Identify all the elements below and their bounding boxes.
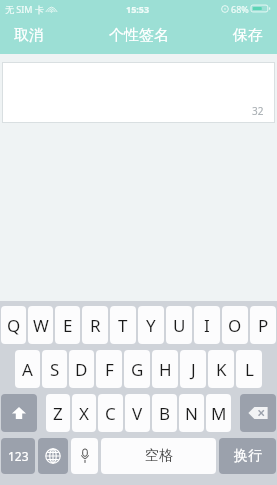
button[interactable]: Switch keyboard: [38, 438, 68, 474]
staticText: Z: [53, 402, 63, 425]
staticText: 68%: [231, 3, 249, 15]
button[interactable]: I: [194, 306, 220, 344]
button[interactable]: S: [42, 350, 67, 388]
button[interactable]: H: [152, 350, 178, 388]
button[interactable]: A: [15, 350, 40, 388]
button[interactable]: 换行: [219, 438, 276, 474]
button[interactable]: Voice input: [71, 438, 98, 474]
staticText: S: [50, 358, 60, 381]
button[interactable]: U: [166, 306, 192, 344]
staticText: T: [118, 314, 128, 337]
staticText: U: [173, 314, 186, 337]
button[interactable]: 123: [1, 438, 35, 474]
button[interactable]: Q: [1, 306, 26, 344]
staticText: E: [63, 314, 73, 337]
staticText: 保存: [233, 26, 263, 45]
button[interactable]: K: [208, 350, 234, 388]
staticText: 取消: [14, 26, 44, 45]
button[interactable]: 取消: [0, 17, 58, 54]
staticText: F: [105, 358, 114, 381]
button[interactable]: N: [179, 394, 204, 432]
button[interactable]: 32: [3, 63, 274, 122]
staticText: D: [75, 358, 88, 381]
staticText: H: [159, 358, 172, 381]
button[interactable]: B: [152, 394, 177, 432]
button[interactable]: F: [96, 350, 122, 388]
button[interactable]: O: [222, 306, 248, 344]
staticText: G: [131, 358, 144, 381]
staticText: W: [33, 314, 49, 337]
staticText: O: [228, 314, 242, 337]
button[interactable]: V: [125, 394, 150, 432]
staticText: 个性签名: [109, 26, 169, 45]
staticText: K: [216, 358, 227, 381]
staticText: P: [258, 314, 269, 337]
staticText: C: [105, 402, 116, 425]
staticText: 32: [252, 104, 264, 118]
staticText: J: [191, 358, 196, 381]
button[interactable]: R: [82, 306, 108, 344]
staticText: I: [204, 314, 210, 337]
staticText: M: [211, 402, 227, 425]
button[interactable]: X: [72, 394, 96, 432]
staticText: R: [90, 314, 101, 337]
staticText: Y: [146, 314, 156, 337]
staticText: L: [245, 358, 254, 381]
staticText: X: [79, 402, 89, 425]
staticText: 空格: [145, 447, 173, 465]
button[interactable]: Z: [46, 394, 70, 432]
staticText: 无 SIM 卡: [5, 3, 44, 15]
staticText: V: [132, 402, 143, 425]
button[interactable]: D: [69, 350, 94, 388]
button[interactable]: W: [28, 306, 53, 344]
staticText: 15:53: [126, 3, 150, 15]
button[interactable]: 保存: [219, 17, 277, 54]
button[interactable]: J: [180, 350, 206, 388]
button[interactable]: E: [55, 306, 80, 344]
button[interactable]: C: [98, 394, 123, 432]
staticText: 123: [8, 448, 29, 464]
button[interactable]: Shift: [1, 394, 37, 432]
button[interactable]: Backspace: [240, 394, 276, 432]
button[interactable]: Y: [138, 306, 164, 344]
staticText: Q: [7, 314, 21, 337]
staticText: B: [159, 402, 171, 425]
button[interactable]: M: [206, 394, 231, 432]
button[interactable]: G: [124, 350, 150, 388]
button[interactable]: P: [250, 306, 276, 344]
staticText: N: [185, 402, 198, 425]
button[interactable]: L: [236, 350, 262, 388]
staticText: 换行: [234, 447, 262, 465]
button[interactable]: T: [110, 306, 136, 344]
button[interactable]: 空格: [101, 438, 216, 474]
staticText: A: [22, 358, 33, 381]
